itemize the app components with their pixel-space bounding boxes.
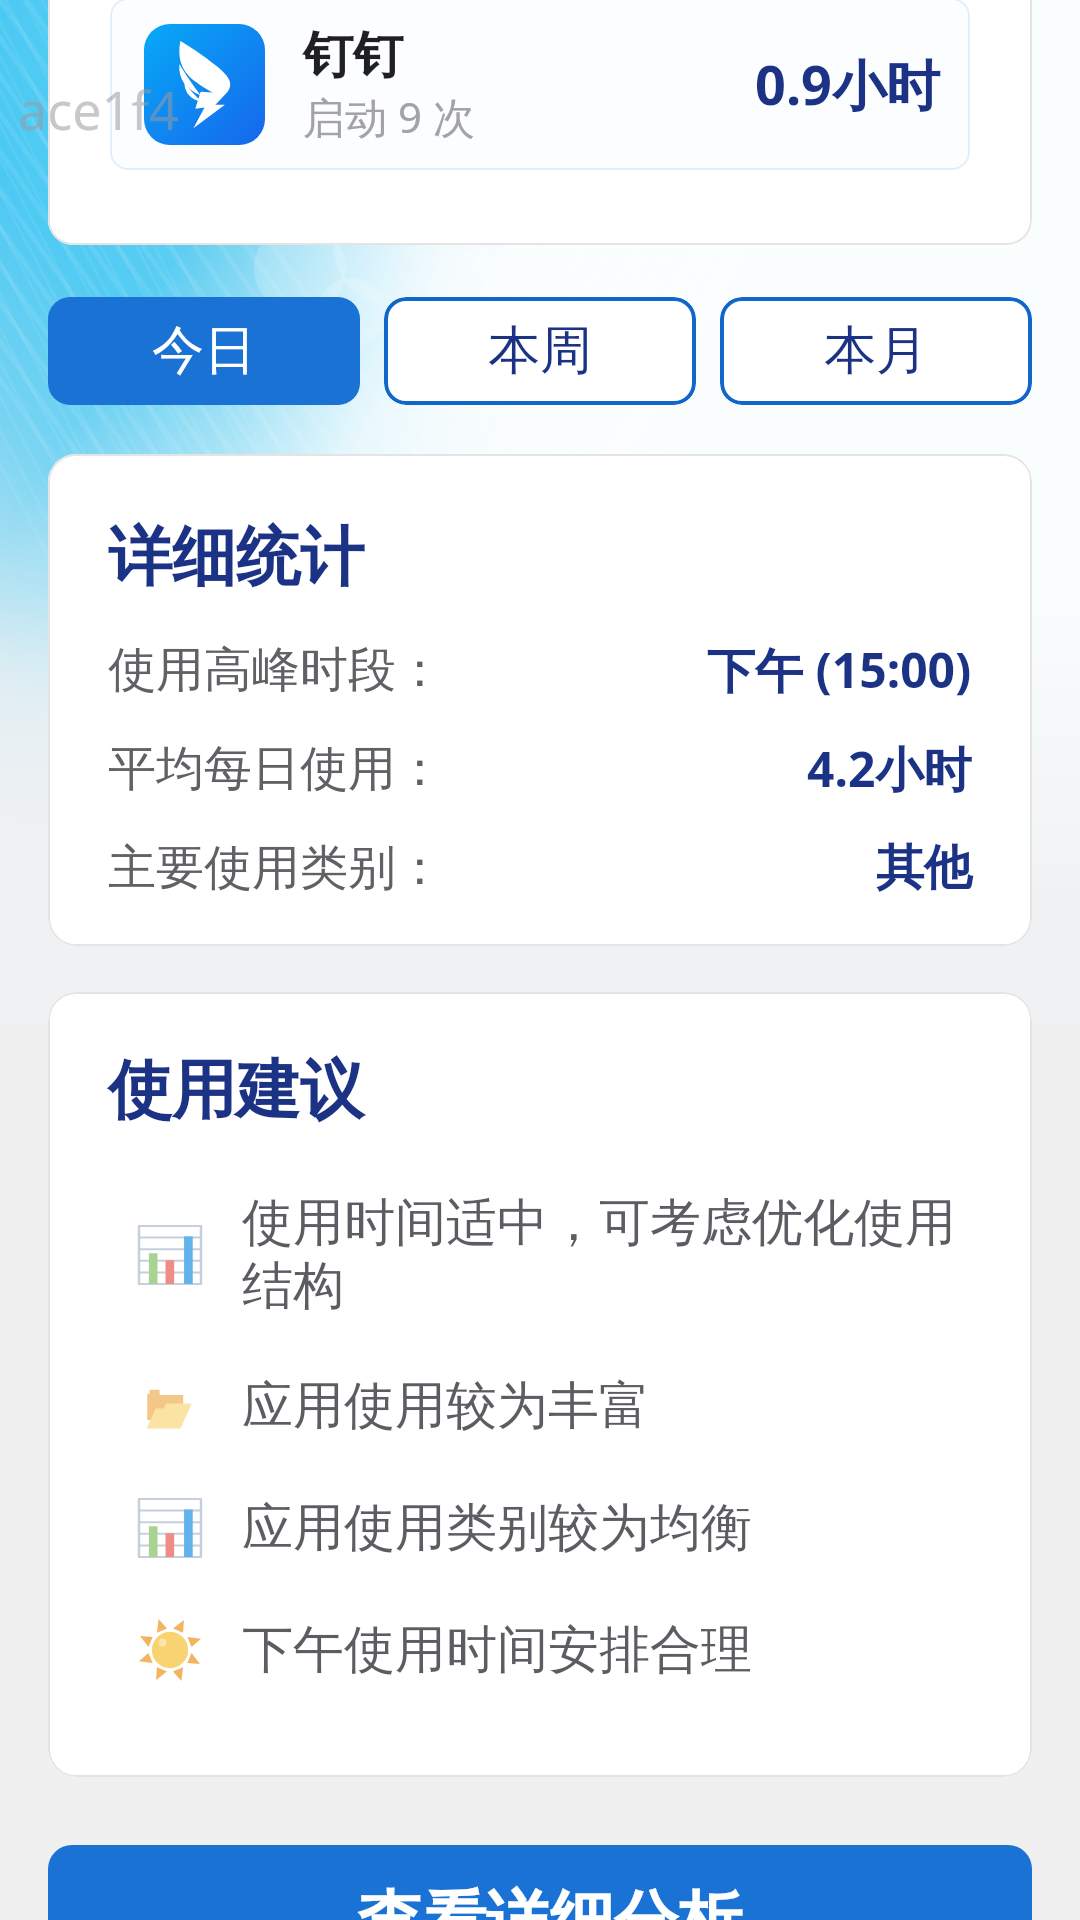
- staticText: 主要使用类别：: [108, 838, 444, 898]
- staticText: 使用高峰时段：: [108, 640, 444, 700]
- staticText: 查看详细分析: [358, 1881, 742, 1920]
- staticText: 使用时间适中，可考虑优化使用结构: [242, 1191, 963, 1318]
- staticText: 应用使用类别较为均衡: [242, 1496, 752, 1560]
- staticText: 使用建议: [108, 1050, 364, 1131]
- staticText: 启动 9 次: [303, 88, 475, 145]
- staticText: ace1f4: [18, 74, 179, 145]
- button[interactable]: 今日: [48, 297, 360, 405]
- staticText: 应用使用较为丰富: [242, 1374, 650, 1438]
- staticText: 平均每日使用：: [108, 739, 444, 799]
- staticText: 本月: [824, 318, 928, 384]
- button[interactable]: 钉钉: [110, 0, 970, 170]
- button[interactable]: 本月: [720, 297, 1032, 405]
- staticText: 今日: [152, 318, 256, 384]
- staticText: 钉钉: [303, 24, 403, 87]
- staticText: 4.2小时: [807, 736, 972, 802]
- staticText: 下午使用时间安排合理: [242, 1618, 752, 1682]
- staticText: 其他: [876, 838, 972, 898]
- staticText: 详细统计: [108, 517, 364, 598]
- staticText: 0.9小时: [755, 47, 940, 121]
- button[interactable]: 本周: [384, 297, 696, 405]
- button[interactable]: 查看详细分析: [48, 1845, 1032, 1920]
- staticText: 本周: [488, 318, 592, 384]
- staticText: 下午 (15:00): [707, 637, 972, 703]
